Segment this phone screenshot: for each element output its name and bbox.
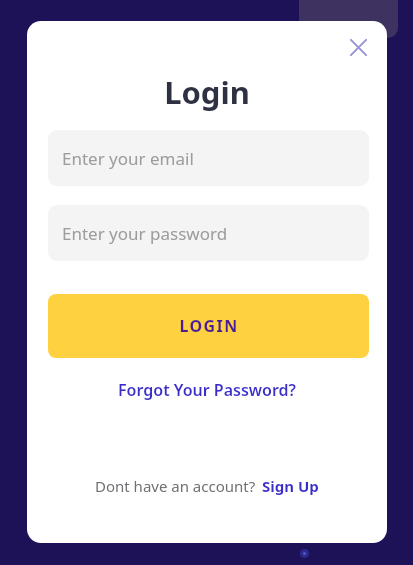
staticText: Forgot Your Password? [118, 379, 296, 401]
staticText: Enter your email [62, 147, 194, 170]
button[interactable]: LOGIN [48, 294, 369, 358]
staticText: Enter your password [62, 222, 228, 245]
button[interactable]: Enter your email [48, 130, 369, 186]
button[interactable]: Forgot Your Password? [112, 373, 302, 407]
button[interactable]: Sign Up [262, 476, 319, 496]
staticText: Sign Up [262, 476, 319, 496]
staticText: LOGIN [179, 315, 239, 337]
staticText: Dont have an account? [95, 476, 256, 496]
button[interactable]: Enter your password [48, 205, 369, 261]
button[interactable]: Close [337, 26, 379, 68]
staticText: Login [164, 71, 250, 113]
